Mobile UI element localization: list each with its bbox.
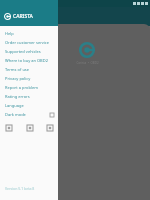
button[interactable]: Terms of use [0, 65, 58, 74]
button[interactable]: Where to buy an OBD2 adapter? [0, 56, 58, 65]
button[interactable]: Twitter [4, 123, 13, 132]
staticText: Terms of use [5, 67, 30, 72]
button[interactable]: Supported vehicles [0, 47, 58, 56]
staticText: Language [5, 103, 24, 108]
staticText: Rating errors [5, 94, 30, 99]
button[interactable]: Rating errors [0, 92, 58, 101]
staticText: Order customer service [5, 40, 50, 45]
staticText: Where to buy an OBD2 adapter? [5, 58, 54, 63]
staticText: Version 5.1 beta 8 [5, 186, 35, 191]
button[interactable]: Language [0, 101, 58, 110]
staticText: CARISTA [13, 13, 33, 20]
staticText: Help [5, 31, 14, 36]
button[interactable]: Help [0, 29, 58, 38]
staticText: Supported vehicles [5, 49, 41, 54]
button[interactable]: Report a problem [0, 83, 58, 92]
staticText: Dark mode [5, 112, 26, 117]
button[interactable]: CARISTA [0, 7, 58, 26]
button[interactable]: Instagram [45, 123, 54, 132]
button[interactable]: Dark mode [0, 110, 58, 119]
button[interactable]: Privacy policy [0, 74, 58, 83]
button[interactable]: Order customer service [0, 38, 58, 47]
staticText: Privacy policy [5, 76, 31, 81]
button[interactable]: Facebook [25, 123, 34, 132]
staticText: Report a problem [5, 85, 38, 90]
staticText: Carista • OBD2 [76, 61, 99, 65]
